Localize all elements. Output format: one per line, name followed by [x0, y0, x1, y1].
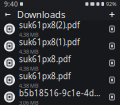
staticText: suk61px8.pdf	[19, 71, 71, 81]
staticText: 4.38 MB	[19, 82, 38, 89]
staticText: suk61px8.pdf	[19, 54, 71, 64]
staticText: 4.38 MB	[19, 65, 38, 72]
button[interactable]: Close	[104, 8, 120, 20]
staticText: 3.06 MB	[19, 99, 38, 105]
staticText: 4.38 MB	[19, 48, 38, 55]
staticText: 4.38 MB	[19, 31, 38, 38]
button[interactable]: suk61px8.pdf	[0, 54, 120, 71]
button[interactable]: Back	[0, 8, 16, 20]
button[interactable]: suk61px8.pdf	[0, 71, 120, 88]
button[interactable]: suk61px8(1).pdf	[0, 37, 120, 54]
staticText: b5b18516-9c1e-4d2c-895c-d458f6…	[19, 88, 101, 98]
staticText: Downloads	[17, 8, 65, 21]
staticText: 92%	[106, 0, 116, 8]
button[interactable]: suk61px8(2).pdf	[0, 20, 120, 37]
staticText: suk61px8(1).pdf	[19, 37, 80, 47]
staticText: 9:40	[4, 0, 18, 8]
button[interactable]: b5b18516-9c1e-4d2c-895c-d458f6…	[0, 88, 120, 105]
staticText: suk61px8(2).pdf	[19, 20, 80, 30]
